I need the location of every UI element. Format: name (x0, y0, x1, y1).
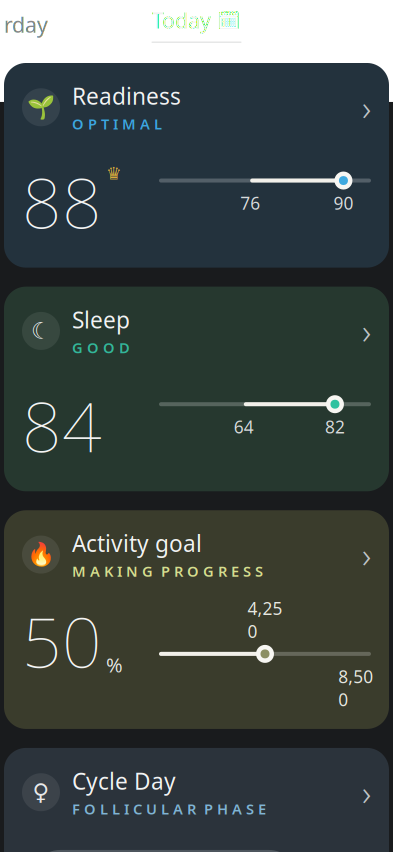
staticText: 50 (22, 595, 102, 687)
staticText: 82 (325, 415, 345, 438)
staticText: ♀ (32, 779, 49, 805)
staticText: 76 (240, 192, 260, 215)
staticText: ♛ (106, 164, 122, 183)
staticText: 88 (22, 156, 102, 248)
staticText: F O L L I C U L A R P H A S E (72, 799, 266, 818)
staticText: Day 1 (22, 844, 172, 852)
staticText: O P T I M A L (72, 114, 162, 134)
staticText: Readiness (72, 81, 181, 111)
staticText: › (362, 531, 371, 577)
staticText: Sleep (72, 305, 130, 335)
button[interactable]: 🔥 (4, 510, 389, 729)
button[interactable]: ♀ (4, 748, 389, 852)
staticText: M A K I N G P R O G R E S S (72, 561, 263, 581)
staticText: rday (4, 10, 48, 39)
staticText: 🗓 (217, 10, 241, 31)
staticText: ☾ (31, 318, 51, 344)
staticText: Activity goal (72, 528, 202, 558)
staticText: 64 (234, 415, 254, 438)
staticText: G O O D (72, 338, 130, 357)
staticText: % (106, 651, 123, 678)
staticText: 🌱 (27, 94, 55, 120)
staticText: 🔥 (27, 542, 55, 567)
staticText: 84 (22, 379, 102, 471)
staticText: 8,500 (338, 665, 373, 711)
staticText: Today (152, 6, 211, 34)
button[interactable]: 🌱 (4, 63, 389, 268)
staticText: › (362, 308, 371, 354)
staticText: › (362, 769, 371, 815)
button[interactable]: Today (136, 6, 256, 43)
staticText: 4,250 (247, 597, 282, 643)
staticText: Cycle Day (72, 766, 176, 796)
button[interactable]: ☾ (4, 287, 389, 491)
staticText: › (362, 84, 371, 130)
button[interactable]: rday (4, 10, 94, 39)
staticText: 90 (333, 192, 353, 215)
